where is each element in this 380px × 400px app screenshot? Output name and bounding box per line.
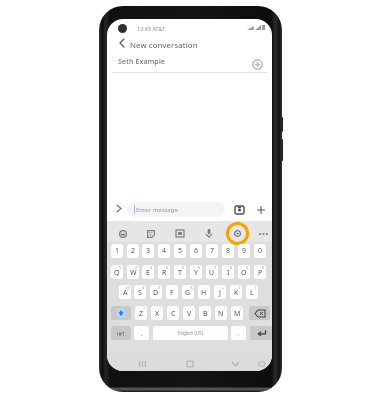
staticText: I [227,268,230,278]
button[interactable]: 9 [238,265,250,279]
staticText: ) [255,285,257,290]
button[interactable]: . [231,326,246,340]
button[interactable]: 4 [158,244,170,258]
button[interactable]: Enter [250,326,272,340]
button[interactable]: + [214,285,226,299]
staticText: English (US) [178,330,203,336]
button[interactable]: English (US) [153,326,228,340]
staticText: E [146,268,150,278]
button[interactable]: Add recipient [249,56,266,73]
button[interactable]: More [252,222,272,245]
staticText: 1 [119,265,122,270]
staticText: L [250,288,254,298]
button[interactable]: ? [231,306,243,320]
staticText: @ [126,285,130,290]
button[interactable]: " [151,306,163,320]
staticText: 0 [258,246,263,256]
button[interactable]: 5 [174,244,186,258]
staticText: 7 [214,265,217,270]
staticText: 2 [131,246,136,256]
staticText: 6 [198,265,201,270]
button[interactable]: 7 [206,244,218,258]
staticText: $ [158,285,161,290]
button[interactable]: @ [119,285,131,299]
button[interactable]: 8 [222,244,234,258]
button[interactable]: ( [230,285,242,299]
staticText: 5 [178,246,183,256]
staticText: & [190,285,193,290]
staticText: 9 [246,265,249,270]
button[interactable]: Voice input [197,222,220,245]
button[interactable]: # [134,285,146,299]
button[interactable]: - [198,285,210,299]
button[interactable]: Back [113,34,131,52]
button[interactable]: , [134,326,149,340]
button[interactable]: ! [215,306,227,320]
button[interactable]: Emoji [111,222,134,245]
staticText: J [219,288,221,298]
button[interactable]: 1 [111,244,123,258]
staticText: ; [208,306,210,311]
button[interactable]: Stickers [139,222,162,245]
button[interactable]: 3 [142,244,154,258]
staticText: M [234,309,241,319]
button[interactable]: !#1 [111,326,131,340]
staticText: 8 [226,246,231,256]
staticText: C [171,309,176,319]
button[interactable]: 8 [222,265,234,279]
button[interactable]: 2 [127,244,139,258]
staticText: + [222,285,225,290]
staticText: O [241,268,247,278]
button[interactable]: 0 [254,265,266,279]
button[interactable]: ; [199,306,211,320]
button[interactable]: 1 [111,265,123,279]
staticText: Z [139,309,144,319]
staticText: 0 [262,265,265,270]
staticText: * [143,306,146,311]
button[interactable]: * [135,306,147,320]
button[interactable]: Shift [111,306,131,320]
button[interactable]: Backspace [249,306,270,320]
button[interactable]: Attach picture [231,201,248,218]
button[interactable]: : [183,306,195,320]
button[interactable]: More options [252,201,269,218]
button[interactable]: Hide keyboard [227,355,244,371]
staticText: 12:45 AT&T [137,25,166,32]
staticText: ? [240,306,242,311]
staticText: 8 [230,265,233,270]
staticText: D [153,288,159,298]
button[interactable]: $ [150,285,162,299]
staticText: G [185,288,191,298]
button[interactable]: _ [166,285,178,299]
button[interactable]: 2 [127,265,139,279]
button[interactable]: Recent apps [134,355,151,371]
staticText: K [234,288,239,298]
button[interactable]: Show more actions [110,200,127,217]
button[interactable]: Home [181,355,198,371]
button[interactable]: ' [167,306,179,320]
button[interactable]: Enter message [127,202,225,217]
staticText: - [207,285,209,290]
button[interactable]: 5 [174,265,186,279]
staticText: ' [177,306,178,311]
button[interactable]: & [182,285,194,299]
staticText: 4 [166,265,169,270]
staticText: , [141,330,143,337]
button[interactable]: 4 [158,265,170,279]
staticText: . [238,330,240,337]
button[interactable]: 7 [206,265,218,279]
staticText: P [258,268,263,278]
button[interactable]: 0 [254,244,266,258]
button[interactable]: ) [246,285,258,299]
button[interactable]: Keyboard settings [226,222,249,245]
button[interactable]: Switch keyboard [253,355,270,371]
button[interactable]: Clipboard [168,222,191,245]
button[interactable]: 3 [142,265,154,279]
button[interactable]: 6 [190,265,202,279]
staticText: H [201,288,207,298]
staticText: T [178,268,182,278]
button[interactable]: 9 [238,244,250,258]
staticText: 7 [210,246,215,256]
button[interactable]: 6 [190,244,202,258]
staticText: 6 [194,246,199,256]
